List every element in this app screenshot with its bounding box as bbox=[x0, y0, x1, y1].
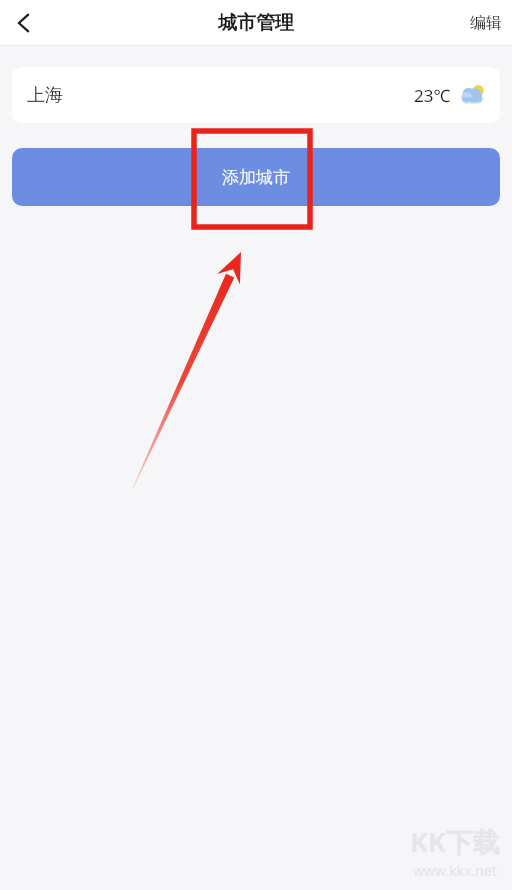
button[interactable]: 上海 bbox=[12, 67, 500, 123]
staticText: 上海 bbox=[27, 84, 63, 107]
button[interactable]: 编辑 bbox=[460, 3, 512, 43]
staticText: KK下载 bbox=[410, 823, 500, 860]
staticText: 城市管理 bbox=[218, 11, 294, 35]
button[interactable]: 添加城市 bbox=[12, 148, 500, 206]
button[interactable]: 返回 bbox=[4, 3, 44, 43]
staticText: 添加城市 bbox=[222, 167, 290, 188]
staticText: 编辑 bbox=[470, 13, 502, 33]
staticText: www.kkx.net bbox=[413, 861, 497, 880]
staticText: 23℃ bbox=[414, 84, 451, 107]
